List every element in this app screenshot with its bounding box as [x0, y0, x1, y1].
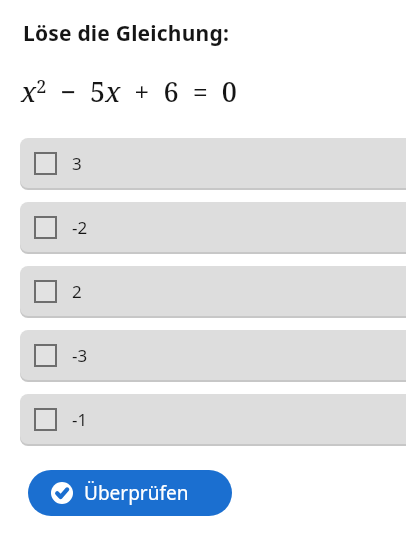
- other: Überprüfen: [51, 482, 73, 504]
- staticText: 3: [72, 152, 82, 175]
- staticText: -2: [72, 216, 88, 239]
- staticText: Überprüfen: [84, 480, 189, 506]
- button[interactable]: -2: [20, 202, 406, 252]
- staticText: -1: [72, 408, 88, 431]
- button[interactable]: -3: [20, 330, 406, 380]
- button[interactable]: 3: [20, 138, 406, 188]
- button[interactable]: -1: [20, 394, 406, 444]
- staticText: x2 − 5x + 6 = 0: [21, 73, 237, 110]
- button[interactable]: Überprüfen: [28, 470, 232, 516]
- staticText: 2: [72, 280, 82, 303]
- staticText: Löse die Gleichung:: [23, 19, 229, 48]
- staticText: -3: [72, 344, 88, 367]
- button[interactable]: 2: [20, 266, 406, 316]
